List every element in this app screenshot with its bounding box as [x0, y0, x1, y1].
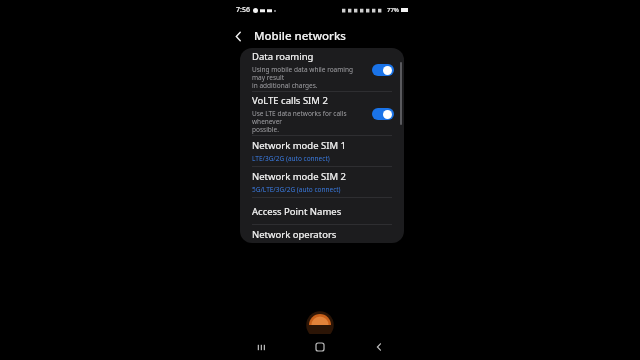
staticText: Data roaming	[252, 50, 314, 63]
staticText: Access Point Names	[252, 205, 342, 218]
button[interactable]: Network operators	[240, 225, 404, 243]
button[interactable]: Toggle on	[372, 64, 394, 76]
staticText: Network operators	[252, 228, 337, 241]
staticText: LTE/3G/2G (auto connect)	[252, 154, 330, 163]
button[interactable]: Back	[365, 334, 393, 360]
button[interactable]: Back	[228, 26, 248, 46]
button[interactable]: Network mode SIM 1	[240, 136, 404, 166]
button[interactable]: Toggle on	[372, 108, 394, 120]
button[interactable]: Recents	[247, 334, 275, 360]
staticText: Network mode SIM 1	[252, 139, 346, 152]
staticText: Using mobile data while roaming may resu…	[252, 65, 366, 90]
staticText: 5G/LTE/3G/2G (auto connect)	[252, 185, 341, 194]
staticText: Use LTE data networks for calls whenever…	[252, 109, 366, 134]
staticText: Network mode SIM 2	[252, 170, 346, 183]
button[interactable]: Access Point Names	[240, 198, 404, 224]
staticText: 77%	[387, 6, 399, 14]
button[interactable]: Network mode SIM 2	[240, 167, 404, 197]
button[interactable]: Data roaming	[240, 48, 404, 91]
button[interactable]: Home	[306, 334, 334, 360]
button[interactable]: VoLTE calls SIM 2	[240, 92, 404, 135]
staticText: VoLTE calls SIM 2	[252, 94, 328, 107]
staticText: 7:56	[236, 5, 250, 15]
staticText: Mobile networks	[254, 28, 346, 44]
